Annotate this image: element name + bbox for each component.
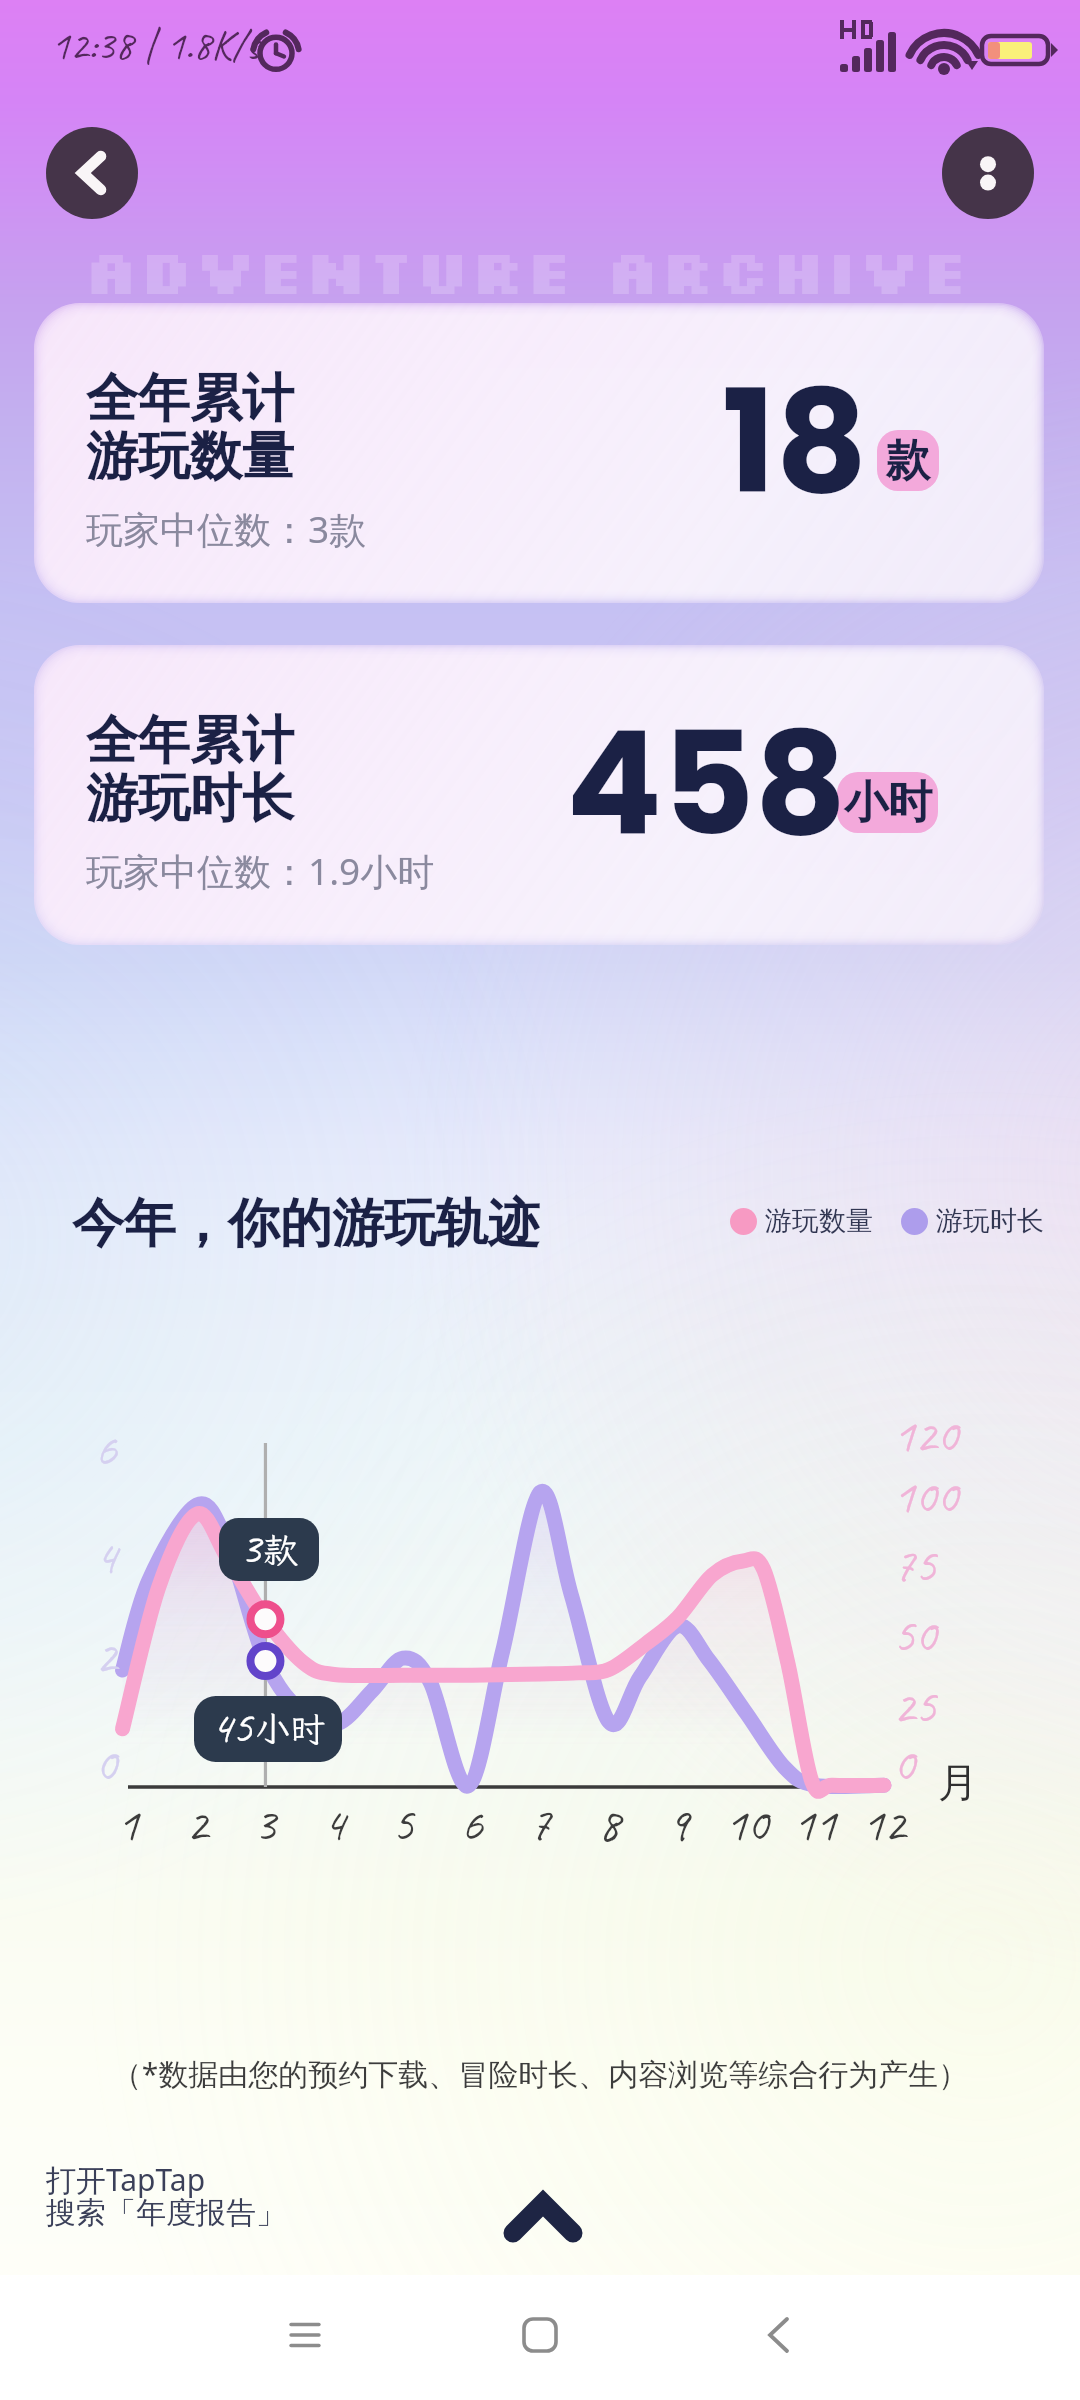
staticText: 120 bbox=[893, 1405, 958, 1465]
staticText: ADVENTURE ARCHIVE bbox=[84, 230, 970, 309]
button[interactable]: More options bbox=[942, 127, 1034, 219]
staticText: 12 bbox=[862, 1794, 906, 1854]
staticText: 50 bbox=[893, 1605, 937, 1665]
staticText: 458 bbox=[566, 685, 847, 884]
staticText: 8 bbox=[598, 1794, 620, 1854]
staticText: 小时 bbox=[844, 775, 932, 830]
button[interactable] bbox=[34, 645, 1044, 945]
staticText: 搜索「年度报告」 bbox=[46, 2194, 286, 2232]
staticText: 今年，你的游玩轨迹 bbox=[72, 1191, 540, 1257]
staticText: 0 bbox=[95, 1734, 117, 1794]
staticText: 小时 bbox=[255, 1706, 326, 1752]
staticText: 6 bbox=[95, 1419, 117, 1479]
staticText: 11 bbox=[793, 1794, 837, 1854]
staticText: （*数据由您的预约下载、冒险时长、内容浏览等综合行为产生） bbox=[0, 2053, 1080, 2094]
staticText: 款 bbox=[886, 433, 930, 488]
staticText: 4 bbox=[323, 1794, 345, 1854]
staticText: 4 bbox=[95, 1527, 117, 1587]
staticText: 玩家中位数：3款 bbox=[86, 503, 367, 554]
staticText: 游玩数量 bbox=[765, 1204, 873, 1238]
staticText: 1 bbox=[117, 1794, 139, 1854]
button[interactable]: Home bbox=[480, 2275, 600, 2395]
staticText: 6 bbox=[461, 1794, 483, 1854]
staticText: 18 bbox=[722, 343, 868, 542]
staticText: 游玩数量 bbox=[86, 424, 294, 490]
staticText: 3 bbox=[254, 1794, 276, 1854]
staticText: 游玩时长 bbox=[86, 766, 294, 832]
staticText: 7 bbox=[529, 1794, 551, 1854]
staticText: 全年累计 bbox=[86, 708, 294, 774]
staticText: 款 bbox=[263, 1527, 299, 1573]
staticText: 45 bbox=[211, 1698, 253, 1756]
staticText: 0 bbox=[893, 1734, 915, 1794]
button[interactable] bbox=[34, 303, 1044, 603]
staticText: 25 bbox=[893, 1676, 937, 1736]
staticText: 2 bbox=[95, 1626, 117, 1686]
button[interactable]: Back bbox=[718, 2275, 838, 2395]
staticText: 3 bbox=[240, 1519, 261, 1577]
staticText: 月 bbox=[938, 1757, 978, 1807]
staticText: 9 bbox=[667, 1794, 689, 1854]
button[interactable]: Recent apps bbox=[245, 2275, 365, 2395]
staticText: 玩家中位数：1.9小时 bbox=[86, 845, 435, 896]
button[interactable]: Back bbox=[46, 127, 138, 219]
staticText: 5 bbox=[392, 1794, 414, 1854]
staticText: 游玩时长 bbox=[936, 1204, 1044, 1238]
staticText: 全年累计 bbox=[86, 366, 294, 432]
staticText: 100 bbox=[893, 1466, 958, 1526]
staticText: 10 bbox=[725, 1794, 769, 1854]
staticText: 2 bbox=[186, 1794, 208, 1854]
staticText: 75 bbox=[893, 1535, 937, 1595]
staticText: 12:38 | 1.8K/s bbox=[51, 20, 260, 72]
staticText: 打开TapTap bbox=[46, 2159, 206, 2200]
